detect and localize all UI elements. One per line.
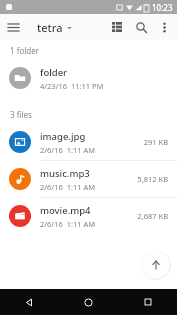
staticText: 291 KB [143,137,168,147]
staticText: folder [40,66,68,79]
button[interactable]: More options [153,16,175,38]
staticText: 2/6/16 1:11 AM [40,219,96,229]
button[interactable]: music.mp3 [0,161,177,198]
staticText: 2/6/16 1:11 AM [40,182,96,192]
button[interactable]: Open navigation drawer [0,14,26,40]
staticText: movie.mp4 [40,204,91,217]
staticText: tetra [37,20,63,35]
button[interactable]: Home [59,289,118,315]
staticText: 4/23/16 11:11 PM [40,81,104,91]
button[interactable]: Change view [105,15,129,39]
staticText: 2,687 KB [137,211,168,221]
staticText: 1 folder [10,45,40,56]
button[interactable]: folder [0,60,177,96]
button[interactable]: movie.mp4 [0,198,177,234]
button[interactable]: Go to parent folder [141,250,170,279]
button[interactable]: Search [129,15,153,39]
button[interactable]: image.jpg [0,124,177,161]
button[interactable]: Recent apps [118,289,177,315]
button[interactable]: tetra [37,20,72,35]
staticText: 10:23 [152,2,173,13]
staticText: music.mp3 [40,167,90,180]
staticText: image.jpg [40,130,86,143]
button[interactable]: Back [0,289,59,315]
staticText: 2/6/16 1:11 AM [40,145,96,155]
staticText: 5,812 KB [137,174,168,184]
staticText: 3 files [10,109,32,120]
